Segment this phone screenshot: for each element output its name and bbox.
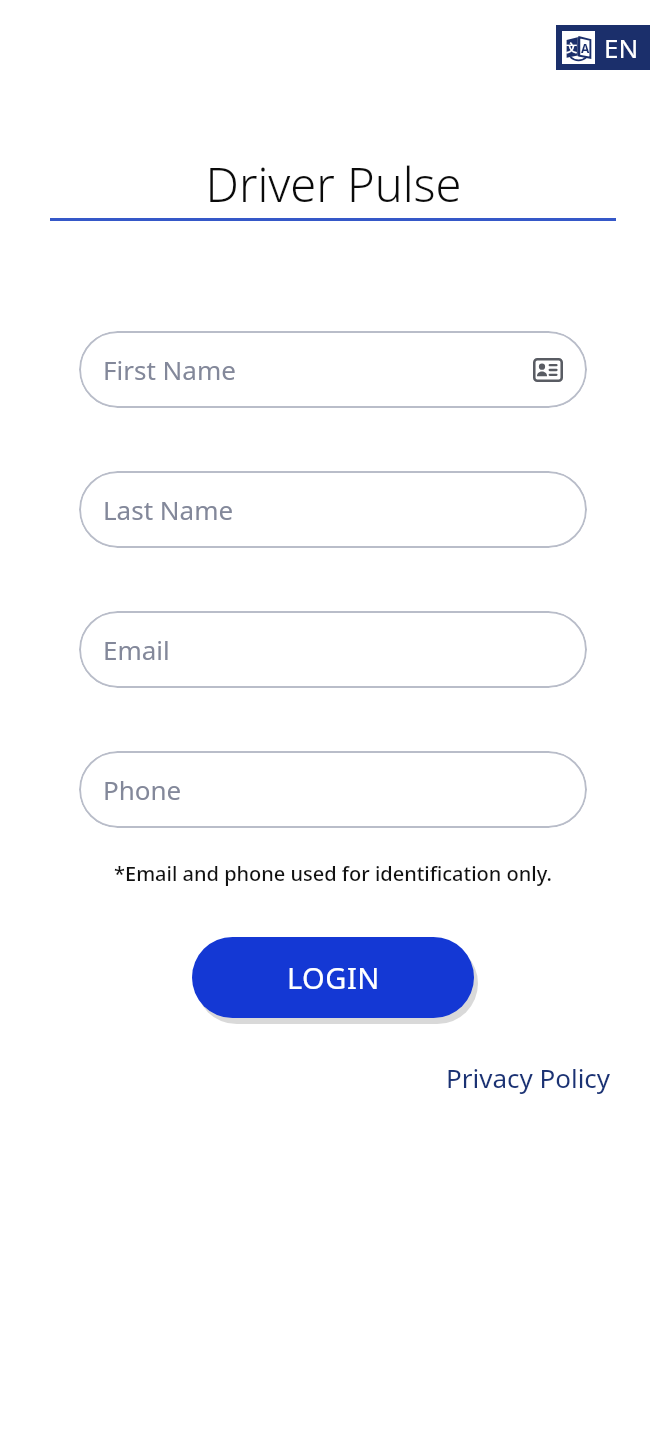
staticText: 文 <box>566 41 577 55</box>
staticText: Last Name <box>103 492 234 527</box>
staticText: Privacy Policy <box>446 1060 611 1095</box>
button[interactable]: Phone <box>79 751 587 828</box>
staticText: EN <box>604 30 639 65</box>
staticText: Email <box>103 632 170 667</box>
staticText: A <box>581 40 590 56</box>
button[interactable]: Privacy Policy <box>440 1056 617 1098</box>
button[interactable]: First Name <box>79 331 587 408</box>
staticText: LOGIN <box>287 958 380 997</box>
button[interactable]: Change language, English <box>556 25 650 70</box>
button[interactable]: Last Name <box>79 471 587 548</box>
staticText: Driver Pulse <box>205 152 462 216</box>
button[interactable]: LOGIN <box>192 937 474 1018</box>
staticText: *Email and phone used for identification… <box>114 860 552 887</box>
staticText: Phone <box>103 772 182 807</box>
button[interactable]: Email <box>79 611 587 688</box>
staticText: First Name <box>103 352 236 387</box>
